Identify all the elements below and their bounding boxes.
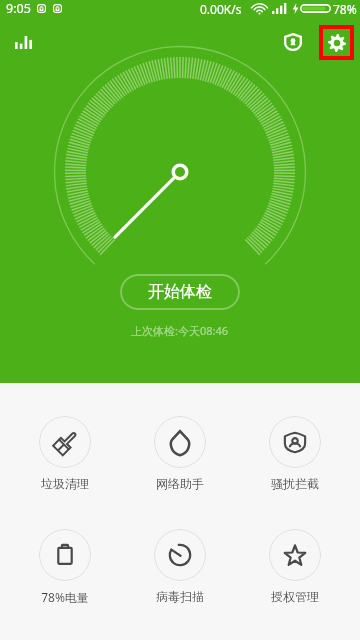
staticText: 垃圾清理	[41, 476, 89, 491]
staticText: 骚扰拦截	[271, 476, 319, 491]
staticText: 病毒扫描	[156, 589, 204, 604]
button[interactable]: 授权管理	[237, 529, 352, 604]
staticText: 9:05	[6, 0, 31, 17]
staticText: 网络助手	[156, 476, 204, 491]
staticText: 0.00K/s	[200, 1, 242, 17]
button[interactable]: Settings	[319, 25, 354, 60]
staticText: 授权管理	[271, 589, 319, 604]
staticText: 78%	[333, 1, 357, 17]
button[interactable]: 病毒扫描	[122, 529, 237, 604]
button[interactable]: Security	[275, 24, 311, 60]
staticText: 上次体检:今天08:46	[131, 323, 229, 338]
button[interactable]: 垃圾清理	[8, 416, 122, 491]
staticText: 开始体检	[148, 282, 212, 302]
button[interactable]: 78%电量	[8, 529, 122, 605]
button[interactable]: 开始体检	[120, 274, 240, 310]
button[interactable]: Traffic statistics	[8, 27, 38, 57]
staticText: 78%电量	[41, 589, 89, 605]
button[interactable]: 网络助手	[122, 416, 237, 491]
button[interactable]: 骚扰拦截	[237, 416, 352, 491]
